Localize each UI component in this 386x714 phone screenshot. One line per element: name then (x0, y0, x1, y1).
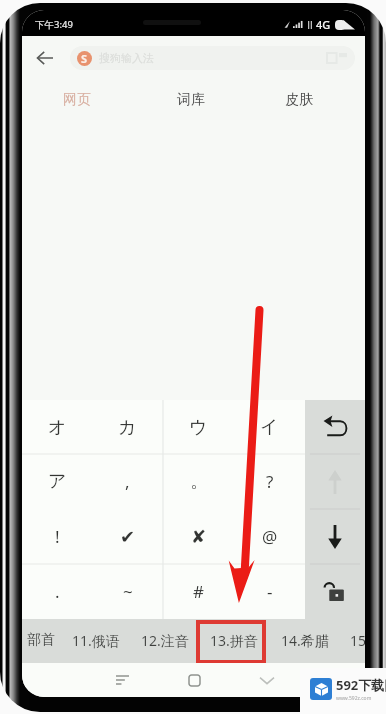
staticText: 15 (350, 631, 365, 650)
button[interactable]: Back (247, 663, 287, 697)
button[interactable]: Home (174, 663, 214, 697)
staticText: ! (55, 525, 60, 548)
staticText: 皮肤 (285, 91, 313, 109)
staticText: ア (48, 470, 67, 493)
button[interactable]: 12.注音 (132, 619, 198, 661)
staticText: S (81, 51, 88, 66)
staticText: ✔ (120, 526, 136, 547)
staticText: ウ (189, 416, 208, 439)
staticText: 11.俄语 (72, 631, 120, 650)
button[interactable]: 部首 (22, 619, 74, 661)
staticText: ✘ (191, 526, 207, 547)
staticText: ~ (123, 580, 133, 603)
button[interactable]: ! (22, 509, 92, 564)
button[interactable]: Undo (305, 400, 365, 454)
staticText: 13.拼音 (210, 631, 258, 650)
staticText: 。 (190, 470, 208, 493)
button[interactable]: オ (22, 400, 92, 454)
button[interactable]: 网页 (47, 80, 107, 120)
button[interactable]: Back (27, 40, 63, 76)
staticText: オ (48, 416, 67, 439)
button[interactable]: S (70, 46, 355, 70)
staticText: @ (262, 525, 278, 548)
staticText: 4G (316, 17, 331, 32)
button[interactable]: ~ (92, 564, 163, 619)
staticText: . (55, 580, 60, 603)
button[interactable]: 。 (163, 454, 234, 509)
staticText: 搜狗输入法 (99, 51, 154, 65)
button[interactable]: ? (234, 454, 305, 509)
button[interactable]: ✘ (163, 509, 234, 564)
button[interactable]: Recents (102, 663, 142, 697)
button[interactable]: カ (92, 400, 163, 454)
button[interactable]: 13.拼音 (201, 619, 267, 661)
staticText: # (193, 580, 204, 603)
staticText: カ (118, 416, 137, 439)
staticText: 部首 (27, 631, 55, 649)
staticText: 网页 (63, 91, 91, 109)
staticText: 下午3:49 (35, 18, 73, 31)
button[interactable]: ウ (163, 400, 234, 454)
button[interactable]: 皮肤 (269, 80, 329, 120)
staticText: 592下载网 (336, 676, 386, 694)
button[interactable]: Lock (305, 564, 365, 619)
button[interactable]: ア (22, 454, 92, 509)
staticText: , (125, 470, 130, 493)
staticText: 12.注音 (141, 631, 189, 650)
button[interactable]: - (234, 564, 305, 619)
button[interactable]: 词库 (161, 80, 221, 120)
button[interactable]: Multi window (320, 41, 354, 75)
button[interactable]: 14.希腊 (272, 619, 338, 661)
button[interactable]: . (22, 564, 92, 619)
button[interactable]: Page down (305, 509, 365, 564)
button[interactable]: # (163, 564, 234, 619)
button[interactable]: イ (234, 400, 305, 454)
button[interactable]: , (92, 454, 163, 509)
staticText: 词库 (177, 91, 205, 109)
staticText: www.592z.com (336, 695, 372, 702)
staticText: 14.希腊 (281, 631, 329, 650)
button[interactable]: 11.俄语 (63, 619, 129, 661)
staticText: ? (266, 470, 274, 493)
staticText: - (267, 580, 273, 603)
button[interactable]: ✔ (92, 509, 163, 564)
staticText: イ (260, 416, 279, 439)
button[interactable]: @ (234, 509, 305, 564)
button[interactable]: 15 (325, 619, 365, 661)
